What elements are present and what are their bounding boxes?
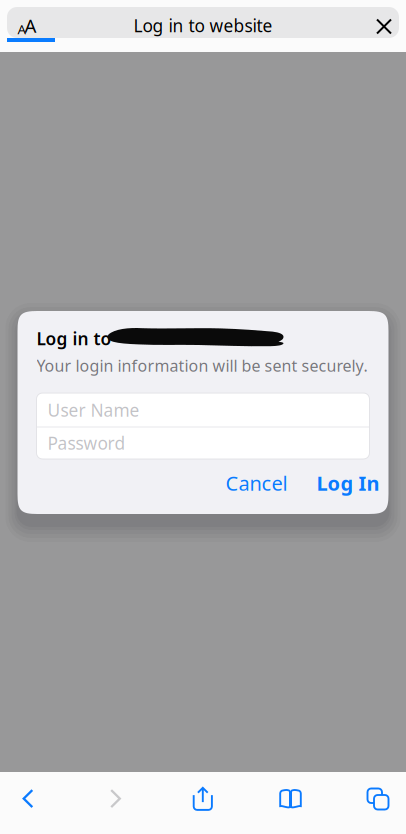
button[interactable]: Password <box>36 427 369 458</box>
button[interactable]: Close tab <box>369 0 406 42</box>
staticText: Log in to <box>36 327 111 350</box>
button[interactable]: Share <box>175 777 231 821</box>
staticText: User Name <box>47 398 139 421</box>
button[interactable]: Forward <box>56 777 175 821</box>
button[interactable]: Cancel <box>216 468 296 498</box>
staticText: Cancel <box>225 470 287 496</box>
staticText: Your login information will be sent secu… <box>36 355 367 376</box>
button[interactable]: Tabs <box>350 777 406 821</box>
button[interactable]: Bookmarks <box>231 777 350 821</box>
staticText: A <box>17 20 26 38</box>
staticText: Password <box>47 431 125 454</box>
staticText: A <box>24 13 36 38</box>
button[interactable]: User Name <box>36 393 369 426</box>
staticText: Log In <box>316 470 379 496</box>
button[interactable]: Page settings <box>0 0 49 40</box>
staticText: Log in to website <box>133 14 272 37</box>
button[interactable]: Log In <box>307 468 388 498</box>
button[interactable]: Back <box>0 777 56 821</box>
